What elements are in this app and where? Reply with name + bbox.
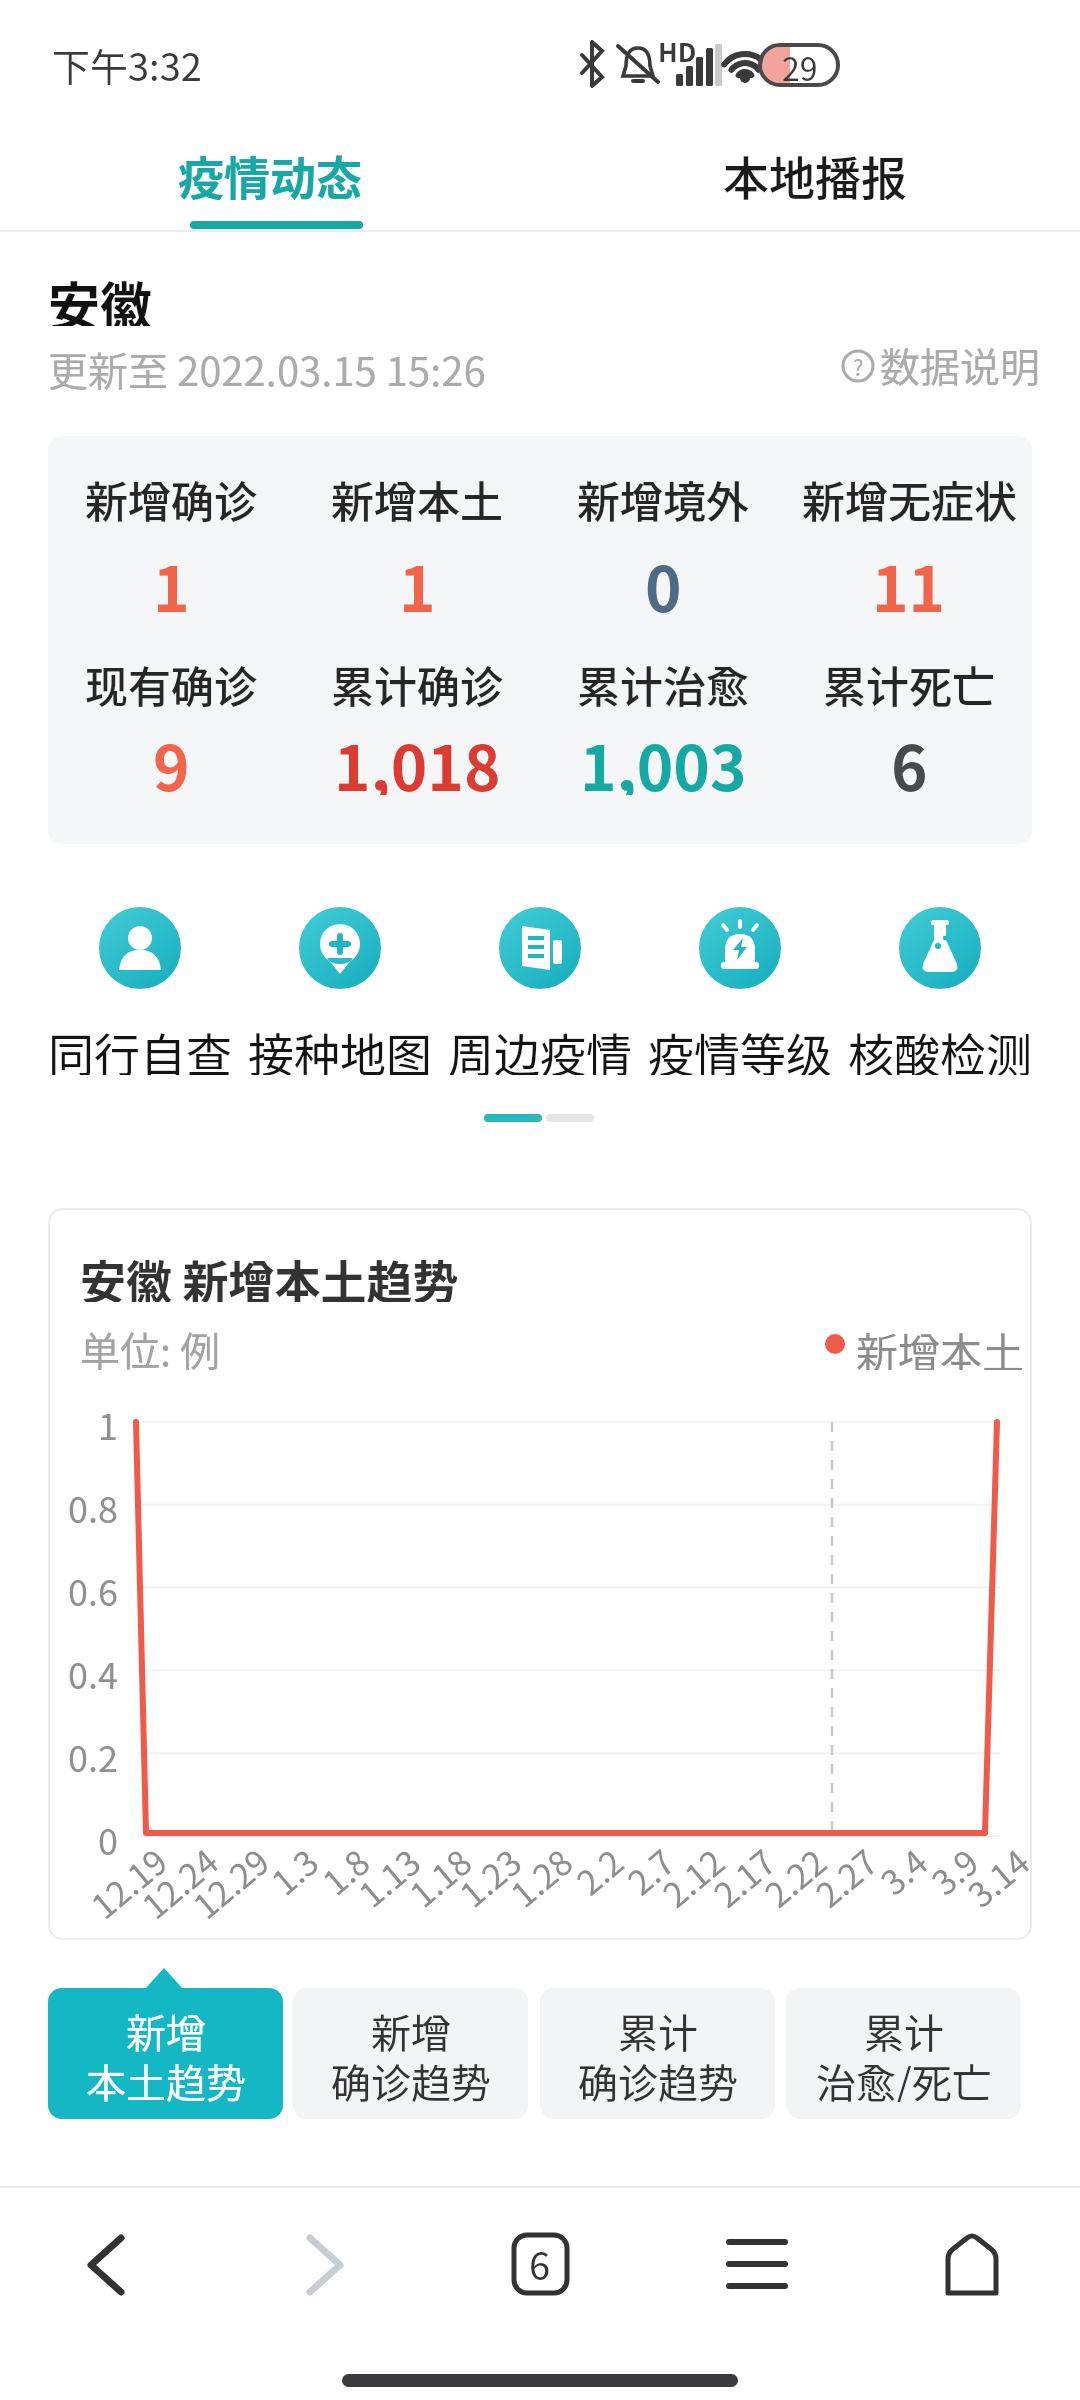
staticText: 本土趋势 xyxy=(86,2052,246,2102)
staticText: 12.29 xyxy=(182,1836,278,1929)
staticText: 核酸检测 xyxy=(848,1019,1032,1075)
staticText: 安徽 新增本土趋势 xyxy=(80,1246,459,1302)
button[interactable]: 新增 xyxy=(293,1988,528,2119)
staticText: 新增确诊 xyxy=(85,468,257,524)
staticText: 周边疫情 xyxy=(448,1019,632,1075)
button[interactable]: 同行自查 xyxy=(40,895,240,1085)
staticText: 3.9 xyxy=(920,1836,988,1905)
staticText: 0.2 xyxy=(68,1730,118,1778)
staticText: 1.23 xyxy=(449,1836,531,1917)
staticText: 2.12 xyxy=(652,1836,734,1917)
staticText: ? xyxy=(853,350,864,382)
staticText: 6 xyxy=(891,719,928,795)
button[interactable]: 疫情等级 xyxy=(640,895,840,1085)
staticText: 0 xyxy=(98,1813,118,1861)
staticText: 3.14 xyxy=(957,1836,1039,1917)
staticText: 单位: 例 xyxy=(80,1320,221,1370)
staticText: 12.19 xyxy=(80,1836,176,1929)
staticText: 累计 xyxy=(864,2002,944,2052)
staticText: 0.8 xyxy=(68,1481,118,1529)
button[interactable] xyxy=(707,2215,807,2315)
staticText: 本地播报 xyxy=(723,142,907,209)
staticText: 1,003 xyxy=(580,719,747,795)
staticText: 1.13 xyxy=(348,1836,430,1917)
staticText: 安徽 xyxy=(48,266,153,326)
staticText: 新增 xyxy=(371,2002,451,2052)
staticText: 确诊趋势 xyxy=(331,2052,491,2102)
staticText: 1.8 xyxy=(311,1836,379,1905)
staticText: 新增境外 xyxy=(577,468,749,524)
staticText: 累计死亡 xyxy=(823,653,995,709)
staticText: 3.4 xyxy=(869,1836,937,1905)
staticText: 1.3 xyxy=(260,1836,328,1905)
staticText: 下午3:32 xyxy=(52,37,202,92)
staticText: 新增 xyxy=(126,2002,206,2052)
staticText: 新增本土 xyxy=(331,468,503,524)
staticText: 2.2 xyxy=(565,1836,633,1905)
staticText: 9 xyxy=(153,719,190,795)
button[interactable]: 数据说明 xyxy=(838,335,1040,395)
staticText: 数据说明 xyxy=(880,336,1040,394)
staticText: 1,018 xyxy=(334,719,501,795)
button[interactable]: 新增 xyxy=(48,1988,283,2119)
staticText: 1.28 xyxy=(500,1836,582,1917)
staticText: 2.7 xyxy=(616,1836,684,1905)
button[interactable]: 累计 xyxy=(540,1988,775,2119)
staticText: 疫情等级 xyxy=(648,1019,832,1075)
staticText: 新增本土 xyxy=(856,1320,1025,1370)
staticText: 0.4 xyxy=(68,1647,118,1695)
button[interactable]: 核酸检测 xyxy=(840,895,1040,1085)
button[interactable] xyxy=(55,2215,155,2315)
staticText: 6 xyxy=(529,2236,551,2291)
staticText: 2.17 xyxy=(703,1836,785,1917)
staticText: HD xyxy=(658,32,697,62)
staticText: 1 xyxy=(399,540,436,616)
staticText: 0.6 xyxy=(68,1564,118,1612)
staticText: 累计确诊 xyxy=(331,653,503,709)
button[interactable]: 6 xyxy=(490,2215,590,2315)
staticText: 1.18 xyxy=(399,1836,481,1917)
button[interactable]: 周边疫情 xyxy=(440,895,640,1085)
staticText: 1 xyxy=(153,540,190,616)
staticText: 累计治愈 xyxy=(577,653,749,709)
staticText: 接种地图 xyxy=(248,1019,432,1075)
staticText: 2.27 xyxy=(805,1836,887,1917)
staticText: 确诊趋势 xyxy=(578,2052,738,2102)
staticText: 同行自查 xyxy=(48,1019,232,1075)
staticText: 29 xyxy=(782,44,818,84)
staticText: 2.22 xyxy=(754,1836,836,1917)
staticText: 12.24 xyxy=(131,1836,227,1929)
staticText: 新增无症状 xyxy=(802,468,1017,524)
staticText: 11 xyxy=(872,540,946,616)
button[interactable]: 接种地图 xyxy=(240,895,440,1085)
staticText: 更新至 2022.03.15 15:26 xyxy=(48,340,486,390)
button[interactable]: 累计 xyxy=(786,1988,1021,2119)
staticText: 1 xyxy=(98,1398,118,1446)
button[interactable] xyxy=(272,2215,372,2315)
staticText: 治愈/死亡 xyxy=(816,2052,992,2102)
button[interactable]: 本地播报 xyxy=(695,130,935,220)
staticText: 疫情动态 xyxy=(178,142,362,209)
staticText: 累计 xyxy=(618,2002,698,2052)
button[interactable] xyxy=(922,2215,1022,2315)
button[interactable]: 疫情动态 xyxy=(150,130,390,220)
staticText: 0 xyxy=(645,540,682,616)
staticText: 现有确诊 xyxy=(85,653,257,709)
